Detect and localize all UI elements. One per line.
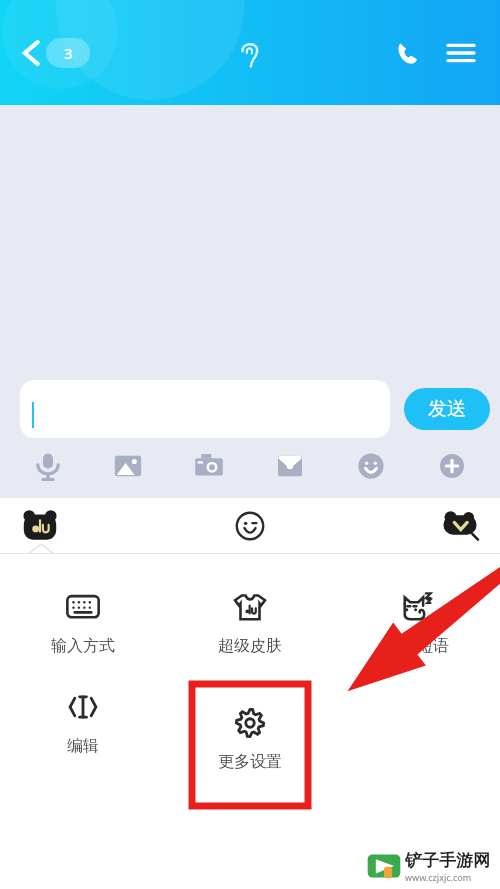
staticText: 3 bbox=[64, 43, 73, 63]
staticText: www.czjxjc.com bbox=[405, 871, 472, 883]
staticText: 懒人短语 bbox=[385, 636, 449, 656]
button[interactable]: Baidu input bbox=[16, 502, 64, 550]
button[interactable]: Hide keyboard bbox=[436, 502, 484, 550]
staticText: 输入方式 bbox=[51, 636, 115, 656]
button[interactable]: Sticker bbox=[330, 438, 411, 494]
button[interactable]: 输入方式 bbox=[0, 584, 166, 662]
button[interactable]: 超级皮肤 bbox=[166, 584, 333, 662]
staticText: 更多设置 bbox=[218, 752, 282, 772]
button[interactable]: 发送 bbox=[404, 388, 490, 430]
button[interactable]: Gallery bbox=[88, 438, 168, 494]
staticText: 铲子手游网 bbox=[405, 850, 490, 871]
button[interactable] bbox=[20, 380, 390, 438]
button[interactable]: 编辑 bbox=[0, 684, 166, 762]
staticText: 超级皮肤 bbox=[218, 636, 282, 656]
button[interactable]: 更多设置 bbox=[192, 684, 308, 806]
button[interactable]: 懒人短语 bbox=[333, 584, 500, 662]
button[interactable]: More bbox=[411, 438, 492, 494]
button[interactable]: Menu bbox=[438, 30, 484, 76]
button[interactable]: Emoji bbox=[227, 503, 273, 549]
button[interactable]: Camera bbox=[168, 438, 249, 494]
button[interactable]: Back, 3 unread bbox=[14, 26, 96, 80]
button[interactable]: Call bbox=[384, 30, 430, 76]
staticText: 发送 bbox=[428, 397, 466, 421]
button[interactable]: Listen mode bbox=[226, 30, 274, 78]
button[interactable]: Red packet bbox=[249, 438, 330, 494]
button[interactable]: Voice bbox=[8, 438, 88, 494]
staticText: 编辑 bbox=[67, 736, 99, 756]
